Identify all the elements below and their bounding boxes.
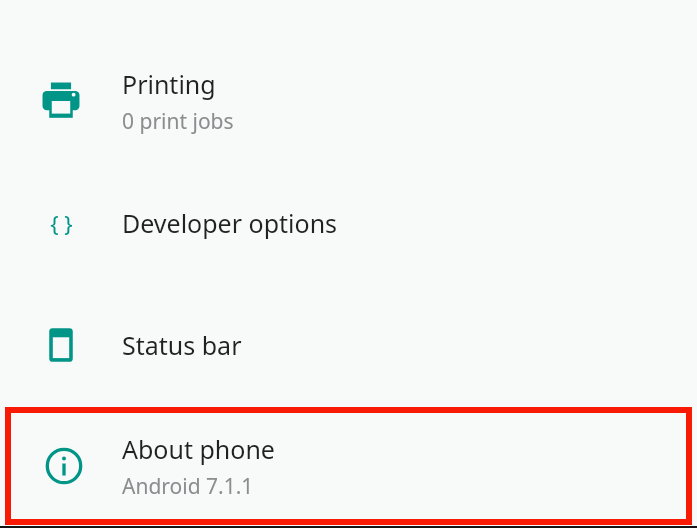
other: Developer options	[0, 162, 122, 284]
button[interactable]: About phone	[5, 407, 692, 525]
button[interactable]: Developer options	[0, 162, 697, 284]
button[interactable]: Status bar	[0, 284, 697, 406]
staticText: { }	[50, 208, 73, 238]
button[interactable]: Printing	[0, 40, 697, 162]
other: Printing	[0, 40, 122, 162]
staticText: 0 print jobs	[122, 107, 234, 136]
other: Status bar	[0, 284, 122, 406]
staticText: Status bar	[122, 328, 242, 362]
staticText: About phone	[122, 432, 275, 466]
staticText: Android 7.1.1	[122, 472, 254, 501]
staticText: Printing	[122, 67, 216, 101]
other: About phone	[5, 407, 122, 525]
staticText: Developer options	[122, 206, 338, 240]
